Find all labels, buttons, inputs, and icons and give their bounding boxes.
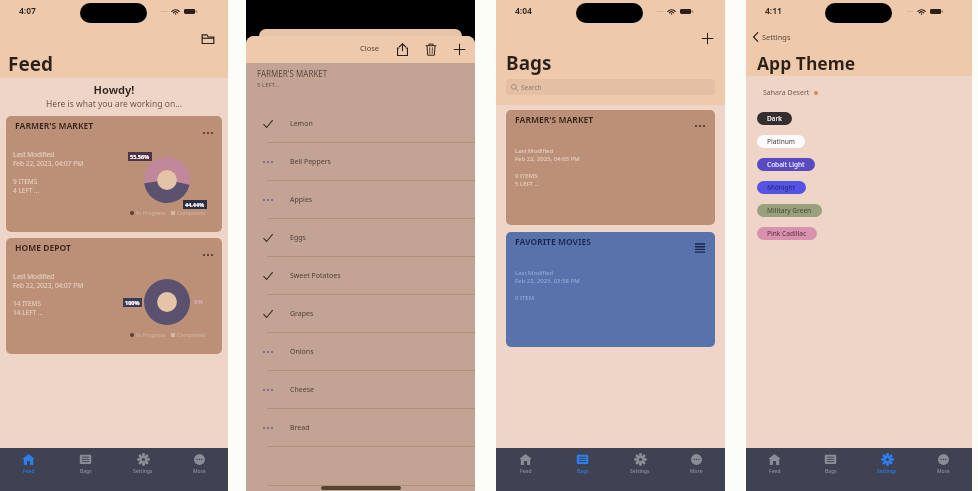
button[interactable]: Feed [746,448,802,491]
button[interactable]: More options [200,125,216,141]
staticText: Feed [23,468,35,475]
button[interactable]: Onions [246,333,475,371]
button[interactable]: Settings [611,448,668,491]
button[interactable]: Eggs [246,219,475,257]
staticText: Lemon [290,119,313,129]
button[interactable]: More [171,448,228,491]
staticText: Close [360,43,380,53]
staticText: 5 LEFT ... [515,180,540,188]
staticText: Last Modified [13,272,55,281]
staticText: More [690,468,703,475]
staticText: Search [521,83,542,92]
staticText: 55.56% [130,153,150,160]
staticText: •••• [161,9,168,14]
staticText: More [193,468,206,475]
staticText: HOME DEPOT [15,242,71,254]
staticText: Settings [630,468,650,475]
button[interactable]: Midnight [757,181,806,194]
staticText: App Theme [757,51,856,75]
staticText: Completed [177,331,206,338]
button[interactable]: Grapes [246,295,475,333]
staticText: 100% [125,299,140,306]
staticText: Eggs [290,233,306,243]
staticText: In Progress [136,209,166,216]
button[interactable]: Settings [858,448,915,491]
staticText: More [937,468,950,475]
button[interactable]: Bags [554,448,611,491]
staticText: Feed [8,51,54,77]
staticText: Cheese [290,385,314,395]
staticText: Feed [769,468,781,475]
staticText: Sahara Desert [763,88,810,98]
button[interactable]: Bell Peppers [246,143,475,181]
button[interactable]: Feed [496,448,554,491]
button[interactable]: FARMER'S MARKET [6,116,222,232]
staticText: Settings [133,468,153,475]
button[interactable]: More [915,448,972,491]
button[interactable]: Bread [246,409,475,447]
staticText: •••• [657,9,664,14]
staticText: Bread [290,423,310,433]
staticText: Last Modified [515,147,554,155]
button[interactable]: Bags [57,448,114,491]
staticText: Feb 22, 2023, 04:07 PM [13,159,84,168]
button[interactable]: Close [357,42,383,54]
button[interactable]: Cobalt Light [757,158,815,171]
button[interactable]: Apples [246,181,475,219]
staticText: 44.44% [185,201,205,208]
button[interactable]: Sweet Potatoes [246,257,475,295]
staticText: Midnight [767,183,796,192]
staticText: Feb 22, 2023, 04:03 PM [515,155,580,163]
button[interactable]: More [668,448,725,491]
staticText: Platinum [767,137,795,146]
button[interactable]: Share [393,40,411,58]
button[interactable]: Settings [114,448,171,491]
staticText: Bags [80,468,92,475]
button[interactable]: Pink Cadillac [757,227,817,240]
button[interactable]: Delete [422,40,440,58]
button[interactable]: FARMER'S MARKET [506,110,715,225]
staticText: Feb 22, 2023, 04:07 PM [13,281,84,290]
staticText: 5 LEFT... [257,81,280,89]
staticText: Military Green [767,206,812,215]
staticText: 0 ITEM [515,294,535,302]
button[interactable]: Feed [0,448,57,491]
button[interactable]: Cheese [246,371,475,409]
staticText: Feed [520,468,532,475]
staticText: Last Modified [515,269,554,277]
button[interactable]: Settings [752,28,791,46]
staticText: Settings [877,468,897,475]
staticText: Grapes [290,309,314,319]
staticText: Feb 22, 2023, 03:58 PM [515,277,580,285]
staticText: 0% [194,298,203,306]
staticText: Howdy! [0,82,228,97]
staticText: Settings [762,32,791,42]
button[interactable]: Add item [450,40,468,58]
button[interactable]: More options [692,118,708,134]
button[interactable]: Add bag [699,30,716,47]
staticText: Cobalt Light [767,160,805,169]
button[interactable]: Lemon [246,105,475,143]
staticText: 4:11 [765,5,782,17]
button[interactable]: Bags [802,448,858,491]
button[interactable]: More options [200,247,216,263]
staticText: FARMER'S MARKET [257,68,328,79]
button[interactable]: Military Green [757,204,822,217]
button[interactable]: FAVORITE MOVIES [506,232,715,347]
button[interactable]: Folders [200,31,216,47]
staticText: •••• [907,9,914,14]
staticText: Bags [825,468,837,475]
button[interactable]: Search [506,79,715,95]
staticText: Dark [767,114,782,123]
staticText: Sweet Potatoes [290,271,341,281]
staticText: FARMER'S MARKET [515,114,594,126]
button[interactable]: Dark [757,112,792,125]
button[interactable]: Platinum [757,135,805,148]
staticText: FAVORITE MOVIES [515,236,591,248]
button[interactable]: HOME DEPOT [6,238,222,354]
staticText: Bags [506,50,552,76]
button[interactable]: More options [692,240,708,256]
staticText: Apples [290,195,313,205]
staticText: 14 LEFT ... [13,308,44,317]
staticText: Here is what you are working on... [0,98,228,110]
